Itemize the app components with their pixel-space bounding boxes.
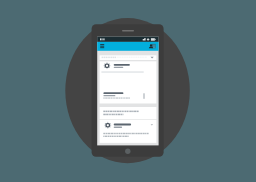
button[interactable]: Phone app illustration (0, 0, 256, 182)
